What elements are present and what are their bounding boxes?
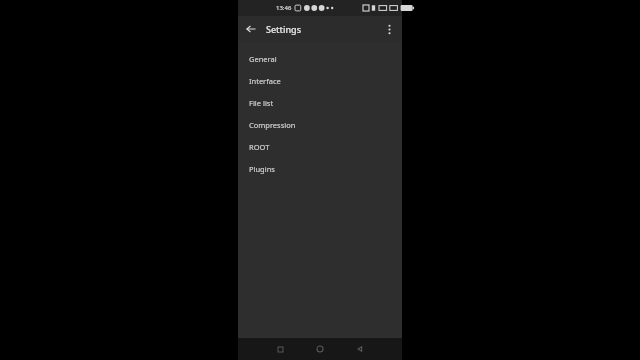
button[interactable]: Home [312, 341, 328, 357]
button[interactable]: File list [238, 92, 402, 114]
button[interactable]: Back [242, 20, 260, 38]
button[interactable]: Recent apps [272, 341, 288, 357]
staticText: ROOT [249, 142, 270, 152]
staticText: File list [249, 98, 274, 108]
button[interactable]: General [238, 48, 402, 70]
staticText: Settings [266, 23, 302, 35]
button[interactable]: Interface [238, 70, 402, 92]
staticText: Compression [249, 120, 296, 130]
button[interactable]: ROOT [238, 136, 402, 158]
staticText: Interface [249, 76, 281, 86]
staticText: Plugins [249, 164, 275, 174]
button[interactable]: Compression [238, 114, 402, 136]
button[interactable]: Back [352, 341, 368, 357]
button[interactable]: More options [380, 20, 398, 38]
staticText: General [249, 54, 277, 64]
button[interactable]: Plugins [238, 158, 402, 180]
staticText: 13:46 [276, 4, 292, 12]
